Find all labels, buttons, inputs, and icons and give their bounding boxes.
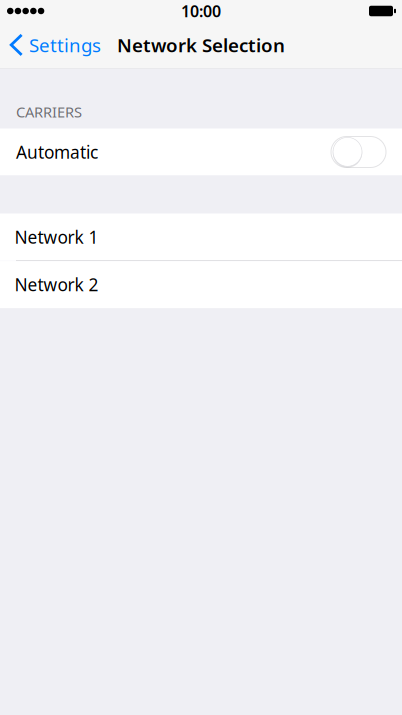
staticText: Network 1 [14, 225, 98, 248]
staticText: Network 2 [14, 273, 98, 296]
staticText: 10:00 [181, 0, 221, 22]
staticText: Settings [29, 33, 101, 57]
staticText: CARRIERS [16, 102, 82, 121]
button[interactable]: Network 2 [0, 261, 402, 308]
button[interactable]: Back to Settings [9, 27, 101, 63]
button[interactable]: Automatic [0, 128, 402, 175]
staticText: Automatic [16, 140, 98, 163]
button[interactable]: Network 1 [0, 213, 402, 260]
staticText: Network Selection [117, 33, 285, 57]
